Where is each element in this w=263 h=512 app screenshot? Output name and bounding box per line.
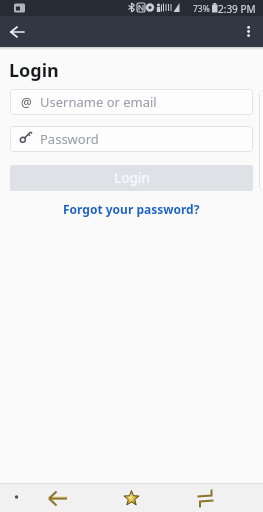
staticText: Username or email xyxy=(40,93,157,111)
button[interactable]: Password xyxy=(10,126,253,152)
staticText: Forgot your password? xyxy=(63,201,200,217)
button[interactable] xyxy=(40,485,76,511)
staticText: Password xyxy=(40,130,99,148)
staticText: 73% xyxy=(193,3,210,15)
staticText: Login xyxy=(114,169,150,187)
button[interactable]: Forgot your password? xyxy=(0,201,263,217)
button[interactable]: Login xyxy=(10,165,253,191)
button[interactable] xyxy=(188,485,224,511)
staticText: Login xyxy=(9,58,59,83)
button[interactable]: @ xyxy=(10,89,253,115)
staticText: @ xyxy=(21,94,32,110)
button[interactable] xyxy=(240,22,258,42)
staticText: 2:39 PM xyxy=(218,2,256,16)
button[interactable] xyxy=(4,24,30,40)
button[interactable] xyxy=(114,485,150,511)
